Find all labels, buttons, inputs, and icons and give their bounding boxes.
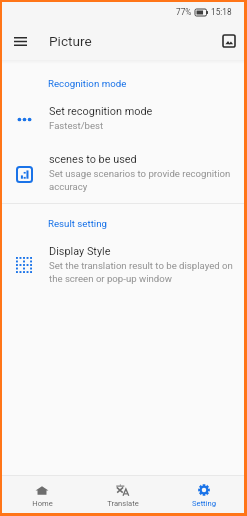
button[interactable]: Menu [6,27,34,55]
staticText: Result setting [48,218,107,229]
button[interactable]: scenes to be used [2,141,244,203]
staticText: scenes to be used [49,153,137,166]
staticText: 77% [176,7,192,17]
staticText: Set usage scenarios to provide recogniti… [49,168,244,193]
staticText: Set the translation result to be display… [49,260,244,285]
button[interactable]: Picture [216,28,242,54]
button[interactable]: Set recognition mode [2,93,244,141]
button[interactable]: Home [2,478,82,512]
button[interactable]: Display Style [2,233,244,295]
staticText: Fastest/best [49,120,104,131]
staticText: Setting [192,499,216,508]
button[interactable]: Setting [163,477,244,512]
staticText: Home [32,499,53,508]
button[interactable]: Translate [82,477,163,512]
staticText: Display Style [49,245,111,258]
staticText: Picture [49,33,92,49]
staticText: Translate [107,499,139,508]
staticText: Recognition mode [48,78,127,89]
staticText: Set recognition mode [49,105,153,118]
staticText: 15:18 [211,7,232,17]
